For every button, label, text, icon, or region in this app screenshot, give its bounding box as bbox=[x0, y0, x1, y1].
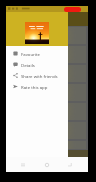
staticText: Details bbox=[21, 62, 35, 68]
button[interactable]: Favourite bbox=[6, 48, 68, 59]
staticText: Favourite bbox=[21, 51, 40, 57]
button[interactable]: Back bbox=[66, 161, 74, 169]
button[interactable]: Recents bbox=[19, 161, 27, 169]
button[interactable]: Home bbox=[43, 161, 51, 169]
button[interactable]: Rate this app bbox=[6, 81, 68, 92]
button[interactable]: Details bbox=[6, 59, 68, 70]
staticText: Share with friends bbox=[21, 73, 58, 79]
button[interactable]: Share with friends bbox=[6, 70, 68, 81]
staticText: Rate this app bbox=[21, 84, 48, 90]
